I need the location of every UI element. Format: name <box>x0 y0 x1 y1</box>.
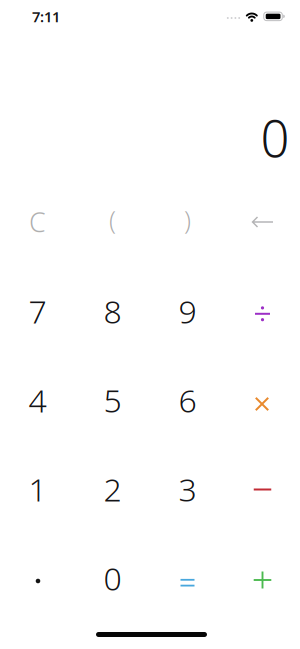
staticText: 8 <box>103 290 121 332</box>
button[interactable]: 7 <box>0 266 75 355</box>
button[interactable]: Backspace <box>225 177 300 266</box>
staticText: 0 <box>103 557 121 599</box>
staticText: 1 <box>28 468 46 510</box>
button[interactable]: 4 <box>0 355 75 444</box>
button[interactable]: 8 <box>75 266 150 355</box>
button[interactable]: 0 <box>75 533 150 622</box>
button[interactable]: Equals <box>150 533 225 622</box>
button[interactable]: 9 <box>150 266 225 355</box>
button[interactable]: ) <box>150 177 225 266</box>
staticText: C <box>29 204 46 240</box>
staticText: ( <box>109 203 116 236</box>
staticText: 0 <box>260 104 289 171</box>
staticText: 5 <box>103 379 121 421</box>
button[interactable]: ( <box>75 177 150 266</box>
staticText: 3 <box>178 468 196 510</box>
button[interactable]: 6 <box>150 355 225 444</box>
button[interactable]: Decimal point <box>0 533 75 622</box>
staticText: 9 <box>178 290 196 332</box>
button[interactable]: 1 <box>0 444 75 533</box>
staticText: 7:11 <box>32 7 60 26</box>
button[interactable]: C <box>0 177 75 266</box>
button[interactable]: 2 <box>75 444 150 533</box>
button[interactable]: 3 <box>150 444 225 533</box>
button[interactable]: Add <box>225 533 300 622</box>
staticText: 6 <box>178 379 196 421</box>
button[interactable]: Multiply <box>225 355 300 444</box>
staticText: 4 <box>28 379 46 421</box>
staticText: ) <box>184 203 191 236</box>
staticText: 7 <box>28 290 46 332</box>
button[interactable]: 5 <box>75 355 150 444</box>
button[interactable]: Divide <box>225 266 300 355</box>
button[interactable]: Subtract <box>225 444 300 533</box>
staticText: 2 <box>103 468 121 510</box>
